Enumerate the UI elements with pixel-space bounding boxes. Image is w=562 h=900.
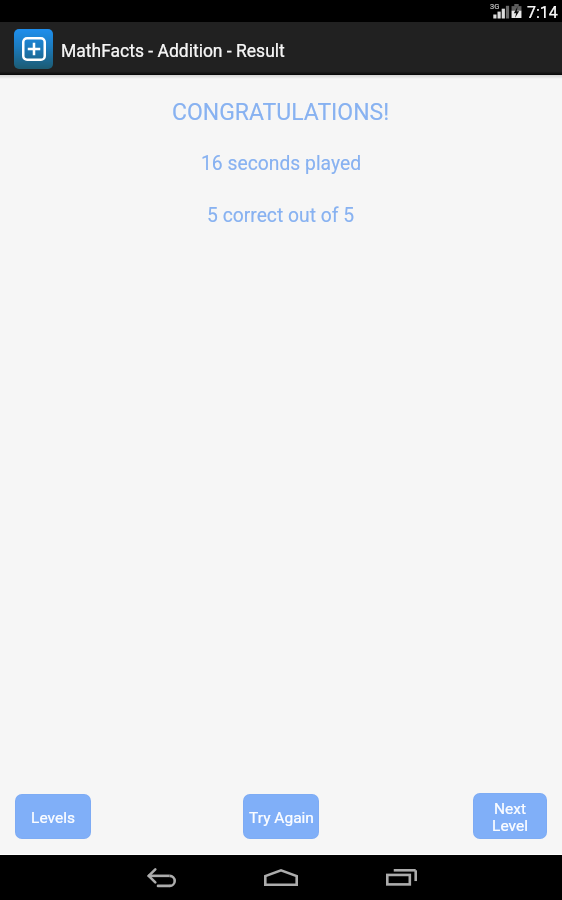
staticText: 3G: [490, 2, 500, 11]
button[interactable]: Next Level: [473, 793, 547, 839]
staticText: Try Again: [249, 809, 314, 827]
staticText: Next Level: [492, 800, 528, 835]
button[interactable]: Home: [241, 855, 321, 900]
staticText: Levels: [31, 809, 75, 827]
button[interactable]: Back: [121, 855, 201, 900]
button[interactable]: Try Again: [243, 794, 319, 839]
staticText: MathFacts - Addition - Result: [61, 41, 285, 62]
button[interactable]: Recent apps: [361, 855, 441, 900]
button[interactable]: Levels: [15, 794, 91, 839]
button[interactable]: App icon: [14, 29, 53, 69]
staticText: CONGRATULATIONS!: [172, 99, 390, 126]
staticText: 7:14: [527, 3, 558, 22]
staticText: 16 seconds played: [201, 152, 362, 175]
staticText: 5 correct out of 5: [207, 204, 355, 227]
